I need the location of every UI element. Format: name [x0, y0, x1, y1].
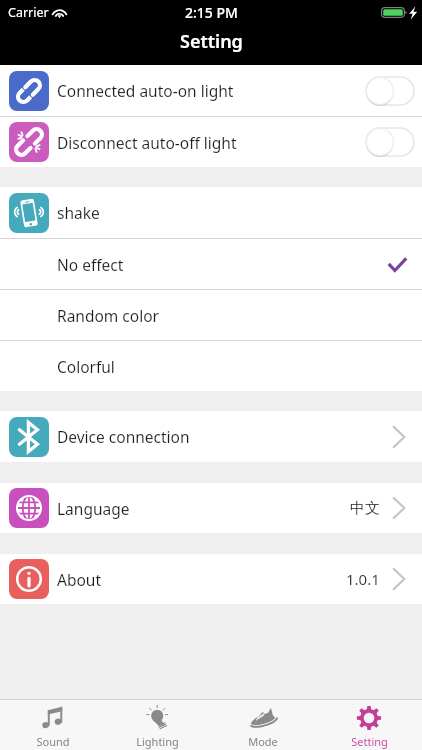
button[interactable]: No effect [0, 239, 422, 289]
button[interactable]: Connected auto-on light [0, 65, 422, 116]
staticText: shake [57, 202, 100, 223]
button[interactable]: About [0, 554, 422, 604]
staticText: Device connection [57, 426, 190, 447]
button[interactable]: shake [0, 187, 422, 238]
staticText: Language [57, 498, 130, 519]
button[interactable]: Random color [0, 290, 422, 340]
staticText: 中文 [350, 499, 380, 518]
button[interactable]: Disconnect auto-off light [0, 117, 422, 167]
button[interactable]: Colorful [0, 341, 422, 391]
staticText: 1.0.1 [346, 569, 380, 589]
button[interactable]: Toggle [365, 127, 415, 157]
button[interactable]: Lighting [105, 700, 210, 750]
staticText: Mode [248, 734, 278, 749]
button[interactable]: Toggle [365, 76, 415, 106]
staticText: 2:15 PM [185, 3, 238, 22]
button[interactable]: Setting [316, 700, 422, 750]
staticText: Sound [36, 734, 70, 749]
staticText: Lighting [136, 734, 179, 749]
staticText: Setting [351, 734, 388, 749]
staticText: No effect [57, 254, 124, 275]
staticText: About [57, 569, 101, 590]
staticText: Connected auto-on light [57, 80, 234, 101]
staticText: Colorful [57, 356, 115, 377]
button[interactable]: Mode [210, 700, 316, 750]
button[interactable]: Sound [0, 700, 105, 750]
button[interactable]: Device connection [0, 411, 422, 462]
staticText: Carrier [8, 4, 49, 21]
button[interactable]: Language [0, 483, 422, 533]
staticText: Random color [57, 305, 159, 326]
staticText: Setting [180, 29, 243, 54]
staticText: Disconnect auto-off light [57, 132, 237, 153]
